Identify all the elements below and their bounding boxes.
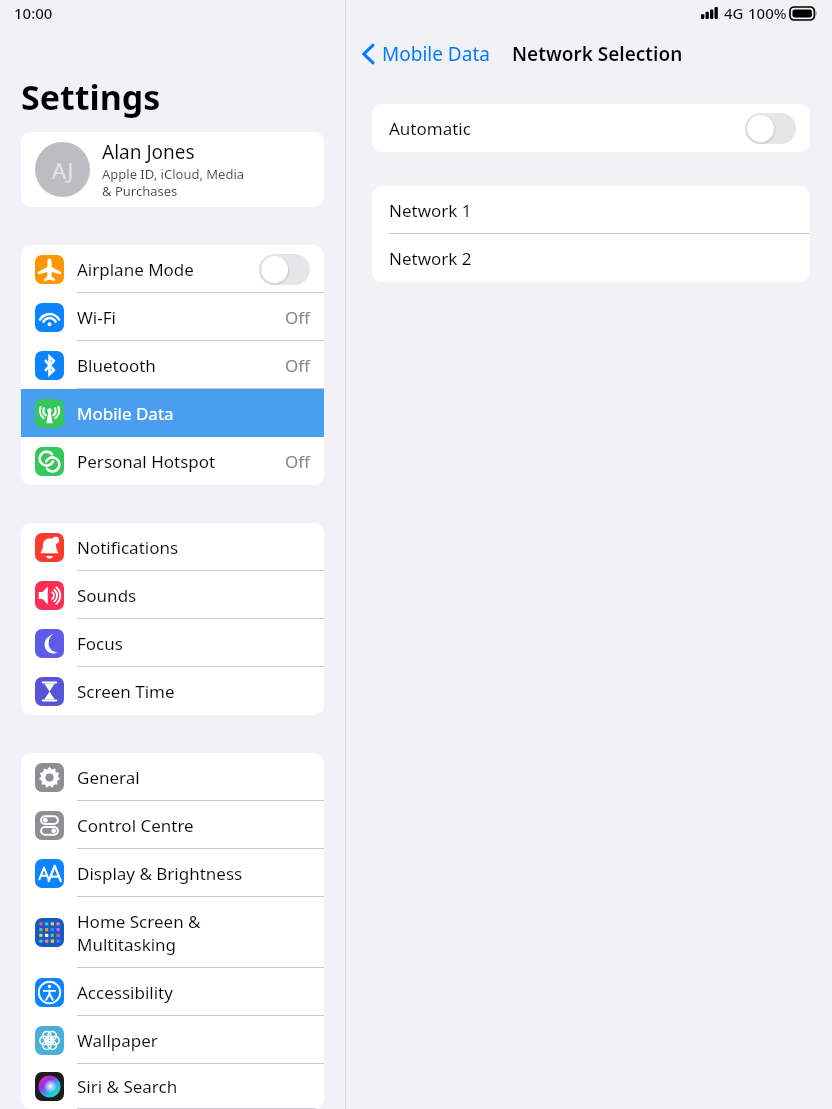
staticText: Network Selection xyxy=(512,41,683,67)
staticText: 4G xyxy=(724,3,744,23)
staticText: 10:00 xyxy=(14,3,53,23)
staticText: Airplane Mode xyxy=(77,258,259,281)
staticText: Off xyxy=(285,306,310,329)
button[interactable]: Screen Time xyxy=(21,667,324,715)
staticText: Off xyxy=(285,450,310,473)
staticText: Wallpaper xyxy=(77,1029,310,1052)
button[interactable]: Display & Brightness xyxy=(21,849,324,897)
staticText: General xyxy=(77,766,310,789)
button[interactable]: Wi-Fi xyxy=(21,293,324,341)
button[interactable]: General xyxy=(21,753,324,801)
staticText: Apple ID, iCloud, Media & Purchases xyxy=(102,165,245,200)
staticText: Network 2 xyxy=(389,247,472,270)
button[interactable]: Personal Hotspot xyxy=(21,437,324,485)
staticText: Mobile Data xyxy=(382,41,490,67)
button[interactable]: Network 2 xyxy=(372,234,810,282)
staticText: Control Centre xyxy=(77,814,310,837)
staticText: Mobile Data xyxy=(77,402,310,425)
button[interactable]: Automatic xyxy=(372,104,810,152)
staticText: Automatic xyxy=(389,117,745,140)
staticText: Home Screen & Multitasking xyxy=(77,910,310,956)
button[interactable]: Bluetooth xyxy=(21,341,324,389)
staticText: Display & Brightness xyxy=(77,862,310,885)
button[interactable]: Siri & Search xyxy=(21,1064,324,1109)
button[interactable]: Toggle xyxy=(259,254,310,285)
button[interactable]: Mobile Data xyxy=(21,389,324,437)
button[interactable]: Toggle xyxy=(745,113,796,144)
button[interactable]: Airplane Mode xyxy=(21,245,324,293)
staticText: Network 1 xyxy=(389,199,472,222)
staticText: 100% xyxy=(748,3,787,23)
staticText: Personal Hotspot xyxy=(77,450,285,473)
staticText: Screen Time xyxy=(77,680,310,703)
button[interactable]: Network 1 xyxy=(372,186,810,234)
button[interactable]: Accessibility xyxy=(21,968,324,1016)
button[interactable]: AJ xyxy=(21,132,324,207)
staticText: Accessibility xyxy=(77,981,310,1004)
button[interactable]: Sounds xyxy=(21,571,324,619)
button[interactable]: Notifications xyxy=(21,523,324,571)
staticText: Bluetooth xyxy=(77,354,285,377)
staticText: Off xyxy=(285,354,310,377)
staticText: Sounds xyxy=(77,584,310,607)
button[interactable]: Wallpaper xyxy=(21,1016,324,1064)
staticText: Siri & Search xyxy=(77,1075,310,1098)
staticText: Focus xyxy=(77,632,310,655)
staticText: Alan Jones xyxy=(102,139,195,165)
staticText: Settings xyxy=(21,74,161,120)
staticText: AJ xyxy=(52,155,74,185)
button[interactable]: Mobile Data xyxy=(362,41,496,67)
button[interactable]: Home Screen & Multitasking xyxy=(21,897,324,968)
button[interactable]: Control Centre xyxy=(21,801,324,849)
button[interactable]: Focus xyxy=(21,619,324,667)
staticText: Notifications xyxy=(77,536,310,559)
staticText: Wi-Fi xyxy=(77,306,285,329)
